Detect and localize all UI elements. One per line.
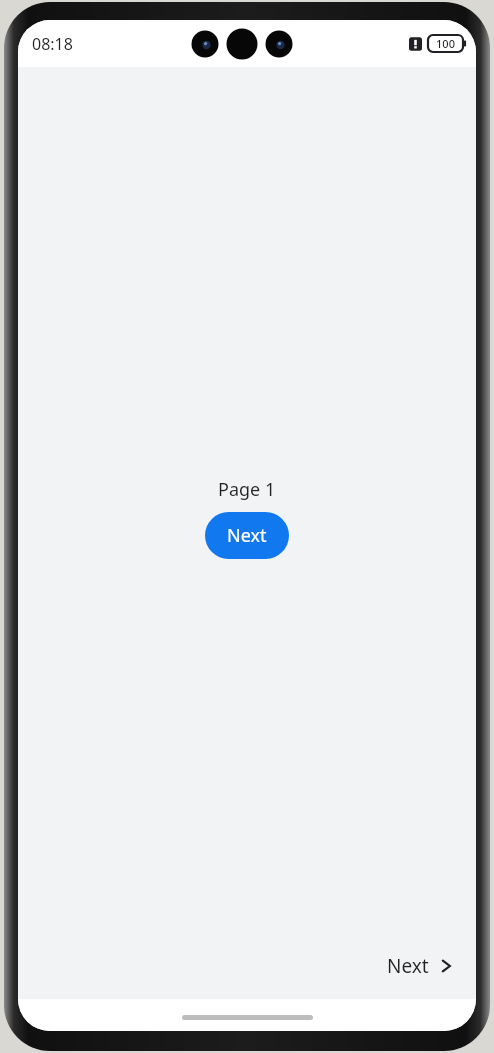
button[interactable]: Next xyxy=(205,512,289,559)
staticText: 08:18 xyxy=(32,33,73,55)
button[interactable]: Next xyxy=(379,947,462,985)
staticText: Page 1 xyxy=(218,477,276,502)
staticText: Next xyxy=(387,953,429,979)
staticText: 100 xyxy=(436,36,455,51)
staticText: Next xyxy=(227,523,267,548)
other: Next xyxy=(438,958,454,974)
